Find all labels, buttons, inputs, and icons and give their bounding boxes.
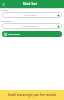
staticText: Mock Test [23, 2, 37, 6]
staticText: Select Subject [4, 14, 57, 17]
staticText: Install now and get your free rewards [8, 93, 57, 97]
button[interactable]: Install now and get your free rewards [0, 90, 64, 100]
staticText: More Filters [8, 33, 20, 36]
staticText: Subject [2, 9, 9, 12]
staticText: Select Experience [4, 25, 57, 28]
button[interactable]: Select Experience [2, 23, 62, 29]
button[interactable]: Back [0, 1, 7, 8]
button[interactable]: Select Subject [2, 12, 62, 18]
button[interactable]: More Filters [2, 31, 62, 37]
staticText: Experience [2, 20, 12, 23]
